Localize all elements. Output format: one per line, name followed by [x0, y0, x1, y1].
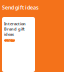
staticText: Choose a gift [4, 37, 15, 44]
staticText: Interaction Brand gift ideas [4, 21, 26, 37]
staticText: Send gift ideas [2, 4, 39, 11]
button[interactable]: Choose a gift [4, 39, 15, 42]
